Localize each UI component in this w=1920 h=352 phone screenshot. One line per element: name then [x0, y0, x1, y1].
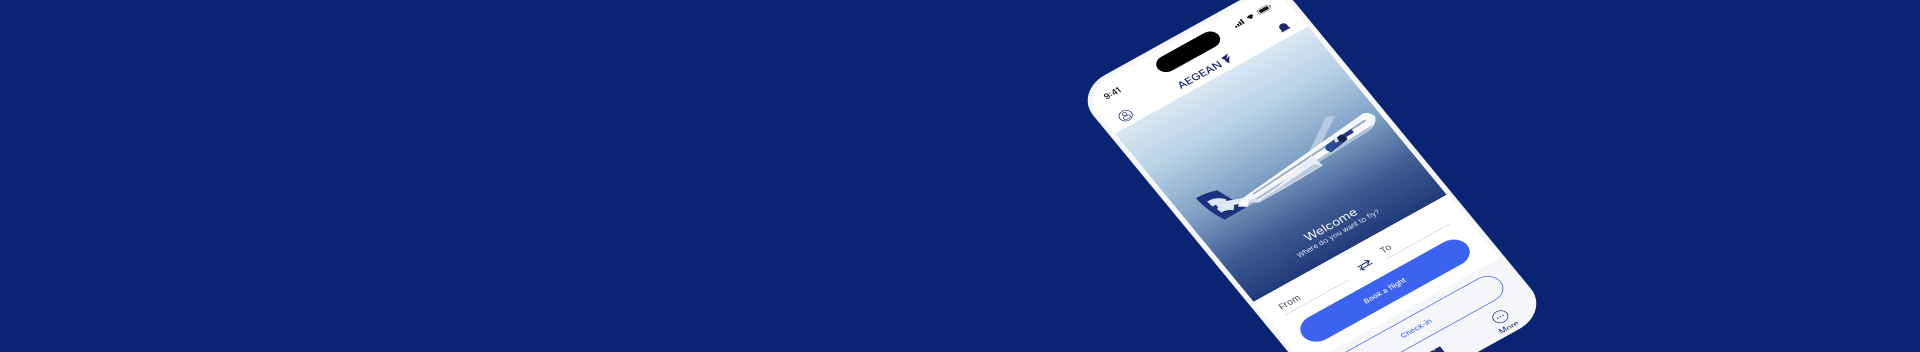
button[interactable]: Notifications	[1414, 172, 1436, 196]
staticText: 9:41	[1109, 123, 1138, 141]
staticText: AEGEAN	[1219, 172, 1301, 196]
